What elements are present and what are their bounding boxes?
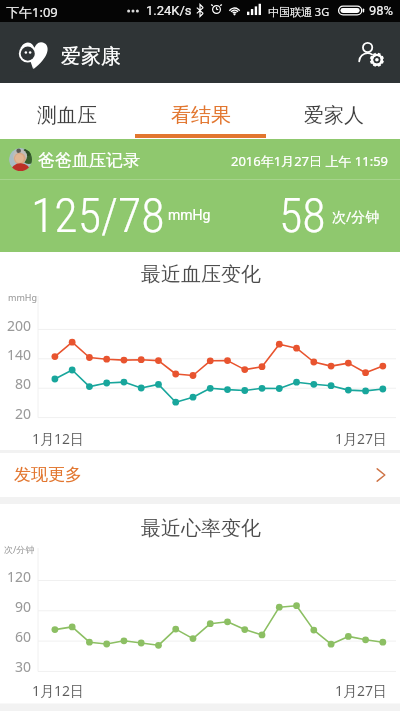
button[interactable]: 发现更多 (0, 458, 400, 497)
staticText: 1月12日 (32, 681, 85, 700)
staticText: 120 (7, 567, 32, 586)
button[interactable]: Account settings (350, 35, 390, 75)
staticText: 30 (15, 657, 32, 676)
staticText: 最近心率变化 (141, 516, 261, 541)
staticText: 1.24K/s (146, 3, 192, 18)
staticText: 58 (279, 187, 326, 243)
staticText: 125/78 (31, 187, 165, 243)
staticText: 20 (15, 404, 32, 423)
staticText: 爱家康 (61, 44, 121, 69)
staticText: 下午1:09 (6, 3, 58, 21)
staticText: 80 (15, 374, 32, 393)
staticText: 次/分钟 (332, 207, 380, 226)
staticText: 次/分钟 (4, 543, 35, 555)
button[interactable]: 测血压 (0, 83, 134, 139)
staticText: 中国联通 3G (268, 4, 330, 19)
staticText: 1月27日 (335, 429, 388, 448)
staticText: 1月27日 (335, 681, 388, 700)
staticText: 140 (7, 345, 32, 364)
staticText: 98% (369, 3, 394, 18)
staticText: 1月12日 (32, 429, 85, 448)
button[interactable]: 爱家人 (267, 83, 400, 139)
staticText: mmHg (168, 207, 211, 223)
staticText: 60 (15, 627, 32, 646)
staticText: 发现更多 (14, 464, 82, 485)
staticText: 200 (7, 316, 32, 335)
staticText: mmHg (8, 291, 38, 303)
staticText: 看结果 (171, 103, 231, 128)
button[interactable]: 看结果 (134, 83, 267, 139)
staticText: 2016年1月27日 上午 11:59 (231, 152, 389, 170)
staticText: 90 (15, 597, 32, 616)
button[interactable]: 爸爸血压记录 (0, 139, 400, 252)
staticText: 测血压 (37, 103, 97, 128)
staticText: 爱家人 (304, 103, 364, 128)
staticText: 最近血压变化 (141, 262, 261, 287)
staticText: 爸爸血压记录 (38, 150, 140, 171)
